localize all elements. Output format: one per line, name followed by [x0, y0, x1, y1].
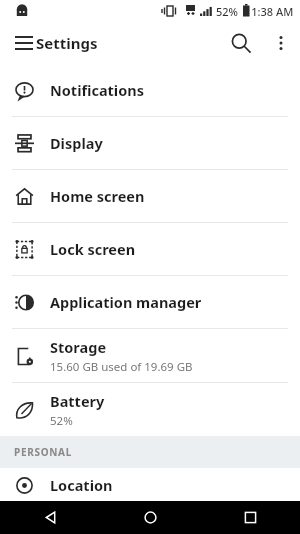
staticText: Application manager [50, 292, 202, 312]
button[interactable]: Lock screen [0, 223, 300, 275]
button[interactable]: Application manager [0, 276, 300, 328]
button[interactable]: Home screen [0, 170, 300, 222]
staticText: 52% [216, 4, 238, 19]
button[interactable]: Recents [200, 501, 300, 534]
staticText: Lock screen [50, 239, 136, 259]
button[interactable]: More options [262, 24, 300, 62]
staticText: Location [50, 475, 113, 495]
staticText: 52% [50, 413, 73, 429]
staticText: 15.60 GB used of 19.69 GB [50, 359, 193, 375]
staticText: Display [50, 133, 103, 153]
button[interactable]: Search [220, 22, 262, 64]
staticText: Settings [36, 33, 98, 53]
button[interactable]: Notifications [0, 64, 300, 116]
staticText: 11:38 AM [245, 4, 294, 19]
button[interactable]: Display [0, 117, 300, 169]
button[interactable]: Home [100, 501, 200, 534]
button[interactable]: Location [0, 468, 300, 501]
staticText: Battery [50, 391, 105, 411]
staticText: Notifications [50, 80, 144, 100]
button[interactable]: Back [0, 501, 100, 534]
staticText: Storage [50, 337, 107, 357]
staticText: Home screen [50, 186, 145, 206]
button[interactable]: Storage [0, 329, 300, 382]
button[interactable]: Battery [0, 383, 300, 436]
button[interactable]: Menu [4, 23, 44, 63]
staticText: PERSONAL [14, 445, 73, 459]
